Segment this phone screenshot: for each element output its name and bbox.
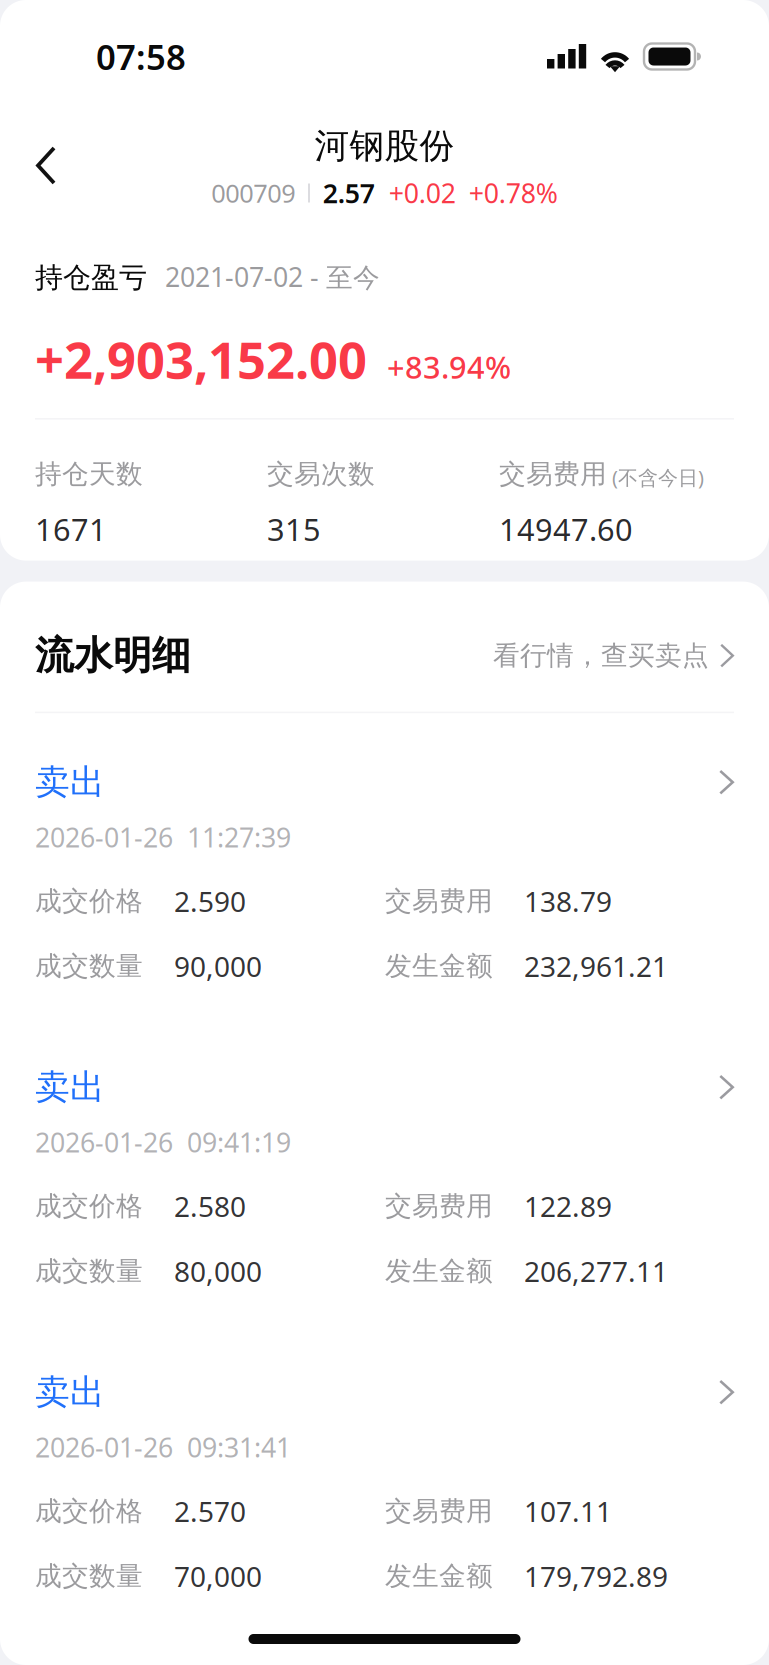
staticText: 看行情，查买卖点 — [493, 639, 709, 672]
staticText: 90,000 — [174, 948, 262, 985]
staticText: 179,792.89 — [524, 1558, 668, 1595]
staticText: 000709 — [211, 176, 295, 210]
staticText: 发生金额 — [385, 1255, 493, 1288]
staticText: 卖出 — [35, 1371, 105, 1413]
staticText: 232,961.21 — [524, 948, 668, 985]
staticText: 交易费用 — [385, 1190, 493, 1223]
staticText: 2.570 — [174, 1493, 246, 1530]
button[interactable]: 流水明细 — [0, 582, 769, 712]
staticText: 80,000 — [174, 1253, 262, 1290]
staticText: +83.94% — [387, 346, 511, 387]
button[interactable]: 卖出 — [0, 1323, 769, 1628]
staticText: 1671 — [35, 509, 107, 549]
staticText: 交易费用 — [385, 885, 493, 918]
staticText: +0.02 — [389, 175, 456, 211]
staticText: 2026-01-26 09:41:19 — [35, 1124, 291, 1160]
staticText: 成交价格 — [35, 885, 143, 918]
staticText: 70,000 — [174, 1558, 262, 1595]
staticText: 交易次数 — [267, 458, 375, 490]
staticText: 持仓盈亏 — [35, 261, 147, 295]
staticText: 持仓天数 — [35, 458, 143, 490]
button[interactable]: Back — [0, 128, 56, 185]
staticText: 2026-01-26 11:27:39 — [35, 819, 291, 855]
staticText: 成交数量 — [35, 1560, 143, 1593]
staticText: 07:58 — [96, 33, 186, 79]
staticText: 成交价格 — [35, 1495, 143, 1528]
staticText: 发生金额 — [385, 950, 493, 983]
staticText: 成交数量 — [35, 950, 143, 983]
staticText: 2.57 — [323, 175, 375, 211]
staticText: 14947.60 — [499, 509, 633, 549]
staticText: 2.590 — [174, 883, 246, 920]
staticText: 2026-01-26 09:31:41 — [35, 1429, 291, 1465]
staticText: +2,903,152.00 — [35, 325, 367, 393]
staticText: 成交数量 — [35, 1255, 143, 1288]
staticText: 发生金额 — [385, 1560, 493, 1593]
staticText: 卖出 — [35, 1066, 105, 1108]
staticText: (不含今日) — [612, 464, 704, 490]
staticText: 交易费用 — [499, 458, 607, 490]
staticText: 2021-07-02 - 至今 — [165, 259, 380, 294]
staticText: 315 — [267, 509, 321, 549]
staticText: 107.11 — [524, 1493, 612, 1530]
staticText: 成交价格 — [35, 1190, 143, 1223]
staticText: 卖出 — [35, 761, 105, 803]
staticText: 河钢股份 — [314, 125, 454, 167]
staticText: 交易费用 — [385, 1495, 493, 1528]
button[interactable]: 卖出 — [0, 1018, 769, 1323]
staticText: 2.580 — [174, 1188, 246, 1225]
staticText: 206,277.11 — [524, 1253, 668, 1290]
button[interactable]: 卖出 — [0, 713, 769, 1018]
staticText: 流水明细 — [35, 632, 191, 679]
staticText: 138.79 — [524, 883, 612, 920]
staticText: 122.89 — [524, 1188, 612, 1225]
staticText: +0.78% — [469, 175, 558, 211]
